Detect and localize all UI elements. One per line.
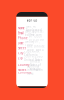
button[interactable]: Country [18,60,46,65]
button[interactable]: Phone [18,35,46,40]
staticText: Date [18,41,24,45]
button[interactable]: Date [18,40,46,45]
button[interactable]: Notes [18,65,46,70]
staticText: 95014-2083 United States [24,55,43,62]
staticText: Name [18,26,25,30]
button[interactable]: Street [18,45,46,50]
staticText: +1 (555) 010-0199 [29,35,44,42]
staticText: Zip [18,56,23,60]
staticText: United States of America [30,60,41,70]
staticText: Sign up [26,19,37,22]
staticText: Cupertino, California [24,50,40,57]
staticText: Jane M. Appleseed [26,25,42,32]
staticText: One Infinite Loop, Apt 4 [27,45,45,52]
staticText: January 01, 1990 [25,40,40,47]
staticText: Email [18,31,24,35]
staticText: jane.appleseed@me.com [25,30,44,37]
staticText: Phone [18,36,28,40]
button[interactable]: Name [18,25,46,30]
button[interactable]: Zip [18,55,46,60]
staticText: Notes [18,68,26,72]
staticText: Street [18,46,26,50]
staticText: Country [18,63,29,67]
staticText: Optional information here [27,65,43,75]
staticText: City [18,51,23,55]
button[interactable]: Continue [18,71,46,74]
button[interactable]: City [18,50,46,55]
button[interactable]: Email [18,30,46,35]
staticText: Continue [18,71,32,74]
